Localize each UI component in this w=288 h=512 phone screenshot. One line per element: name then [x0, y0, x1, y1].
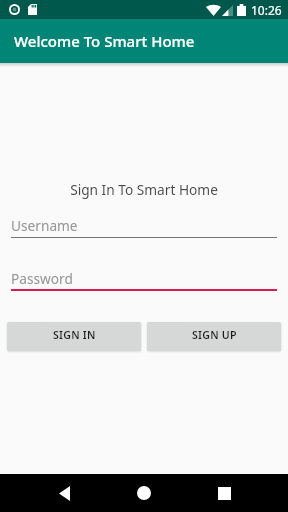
staticText: SIGN UP	[192, 328, 237, 342]
button[interactable]: Recent apps	[195, 474, 253, 512]
staticText: Sign In To Smart Home	[0, 180, 288, 199]
staticText: 10:26	[251, 2, 282, 18]
staticText: Password	[11, 269, 73, 288]
button[interactable]: SIGN UP	[147, 322, 281, 351]
staticText: SIGN IN	[53, 328, 96, 342]
button[interactable]: Back	[35, 474, 93, 512]
button[interactable]: Home	[115, 474, 173, 512]
staticText: Username	[11, 216, 78, 235]
staticText: Welcome To Smart Home	[14, 31, 195, 51]
button[interactable]: SIGN IN	[7, 322, 141, 351]
